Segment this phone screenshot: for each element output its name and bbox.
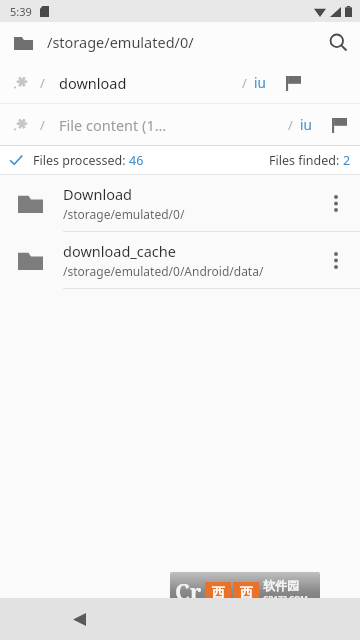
button[interactable]: Download — [0, 175, 360, 231]
staticText: / — [40, 74, 45, 92]
staticText: 西 — [212, 584, 225, 600]
staticText: 5:39 — [10, 4, 32, 19]
staticText: download_cache — [63, 241, 176, 261]
button[interactable]: More options — [318, 175, 354, 231]
staticText: /storage/emulated/0/Android/data/com.goo… — [63, 263, 318, 279]
button[interactable]: / — [0, 62, 360, 103]
staticText: Cr — [175, 576, 202, 606]
staticText: download — [59, 73, 127, 93]
staticText: / — [40, 116, 45, 134]
button[interactable]: download_cache — [0, 232, 360, 288]
button[interactable]: / — [0, 104, 360, 145]
staticText: Files processed: — [33, 152, 129, 169]
staticText: / — [242, 74, 247, 92]
staticText: Download — [63, 184, 132, 204]
staticText: CR173.COM — [263, 593, 308, 604]
staticText: File content (1MB max file size) — [59, 115, 173, 135]
button[interactable]: More options — [318, 232, 354, 288]
staticText: 软件园 — [263, 578, 299, 593]
staticText: /storage/emulated/0/ — [47, 32, 194, 52]
button[interactable]: Search — [316, 22, 360, 62]
button[interactable]: Flag — [278, 68, 308, 98]
staticText: /storage/emulated/0/ — [63, 206, 185, 222]
staticText: 西 — [240, 584, 253, 600]
staticText: 2 — [343, 152, 351, 169]
staticText: iu — [254, 74, 266, 92]
button[interactable]: Flag — [324, 110, 354, 140]
staticText: iu — [300, 116, 312, 134]
staticText: Files finded: — [269, 152, 343, 169]
button[interactable]: Back — [60, 600, 98, 638]
staticText: / — [288, 116, 293, 134]
staticText: 46 — [129, 152, 144, 169]
